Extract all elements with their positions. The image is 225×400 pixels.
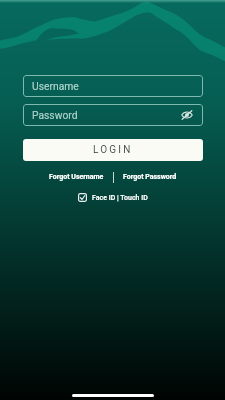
- button[interactable]: Username: [23, 75, 203, 97]
- button[interactable]: Face ID | Touch ID: [75, 190, 151, 205]
- staticText: Password: [32, 109, 78, 121]
- button[interactable]: Show password: [180, 108, 194, 122]
- button[interactable]: Password: [23, 104, 203, 126]
- staticText: Forgot Username: [49, 173, 104, 181]
- staticText: Face ID | Touch ID: [92, 194, 148, 202]
- button[interactable]: Forgot Username: [40, 171, 113, 183]
- staticText: Username: [32, 80, 79, 92]
- staticText: Forgot Password: [123, 173, 177, 181]
- button[interactable]: LOGIN: [23, 139, 203, 161]
- staticText: LOGIN: [93, 144, 133, 156]
- button[interactable]: Forgot Password: [114, 171, 186, 183]
